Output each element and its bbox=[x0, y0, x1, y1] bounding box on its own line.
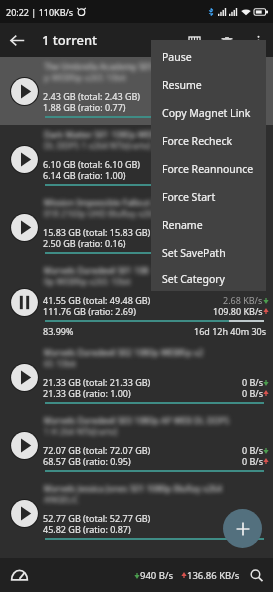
button[interactable]: Resume bbox=[151, 71, 266, 99]
button[interactable]: Marvels Daredevil S02 1080p WEBRip x2 bbox=[0, 343, 273, 411]
staticText: 136.86 KB/s bbox=[187, 569, 240, 582]
staticText: Resume bbox=[162, 78, 202, 92]
staticText: 6.10 GB (total: 6.10 GB) bbox=[43, 158, 141, 170]
button[interactable]: Rename bbox=[151, 211, 266, 239]
staticText: 0 B/s bbox=[242, 387, 263, 399]
staticText: 6.14 GB (ratio: 1.00) bbox=[43, 169, 126, 181]
staticText: Dark Matter S01 1080p WEB bbox=[44, 129, 157, 141]
staticText: Marvels Daredevil S02 1080p WEBRip x2 bbox=[44, 347, 204, 359]
staticText: The Umbrella Academy S01 1080 bbox=[44, 61, 175, 73]
staticText: 21.33 GB (ratio: 1.00) bbox=[43, 387, 131, 399]
staticText: 16d 12h 40m 30s bbox=[194, 325, 267, 337]
staticText: Marvels Daredevil S03 1080p AP WEB DL DD… bbox=[44, 415, 230, 427]
button[interactable]: Force Reannounce bbox=[151, 155, 266, 183]
button[interactable]: Pause bbox=[151, 43, 266, 71]
staticText: Rename bbox=[162, 218, 203, 232]
staticText: Copy Magnet Link bbox=[162, 106, 251, 120]
staticText: 20:22 | 110KB/s bbox=[6, 6, 74, 18]
button[interactable]: Mission Impossible Fallout 2 bbox=[0, 193, 273, 261]
staticText: Force Start bbox=[162, 190, 216, 204]
button[interactable]: Copy Magnet Link bbox=[151, 99, 266, 127]
staticText: Force Reannounce bbox=[162, 162, 254, 176]
staticText: 2.43 GB (total: 2.43 GB) bbox=[43, 90, 141, 102]
staticText: 0p WEBRip x265 10bit bbox=[44, 276, 131, 288]
staticText: 2.68 KB/s bbox=[223, 294, 263, 306]
staticText: 65 10bit bbox=[44, 358, 77, 370]
staticText: 940 B/s bbox=[140, 569, 174, 582]
staticText: Pause bbox=[162, 50, 192, 64]
staticText: Set SavePath bbox=[162, 246, 226, 260]
staticText: Set Category bbox=[162, 272, 225, 286]
staticText: ANGELiC bbox=[44, 494, 79, 506]
button[interactable]: Marvels Daredevil S03 1080p AP WEB DL DD… bbox=[0, 411, 273, 479]
staticText: 41.55 GB (total: 49.48 GB) bbox=[43, 294, 151, 306]
staticText: Force Recheck bbox=[162, 134, 233, 148]
staticText: 52.77 GB (total: 52.77 GB) bbox=[43, 512, 151, 524]
button[interactable]: Marvels Daredevil S01 108 bbox=[0, 261, 273, 343]
staticText: 018 2160p UHD BluRay x265 bbox=[44, 208, 158, 220]
button[interactable]: Marvels Jessica Jones S01 1080p BluRay x… bbox=[0, 479, 273, 547]
staticText: 21.33 GB (total: 21.33 GB) bbox=[43, 376, 151, 388]
staticText: 83.99% bbox=[43, 325, 74, 337]
staticText: 1 torrent bbox=[42, 31, 98, 49]
staticText: Mission Impossible Fallout 2 bbox=[44, 197, 157, 209]
staticText: 1.88 GB (ratio: 0.77) bbox=[43, 101, 126, 113]
button[interactable]: Select all bbox=[180, 26, 209, 55]
button[interactable]: The Umbrella Academy S01 1080 bbox=[0, 57, 273, 125]
staticText: 2.50 GB (ratio: 0.16) bbox=[43, 237, 126, 249]
button[interactable]: Back bbox=[0, 23, 34, 57]
button[interactable]: Set SavePath bbox=[151, 239, 266, 267]
staticText: 0 B/s bbox=[242, 455, 263, 467]
staticText: Marvels Daredevil S01 108 bbox=[44, 265, 149, 277]
button[interactable]: Speed limit bbox=[6, 562, 32, 588]
staticText: 68.57 GB (ratio: 0.95) bbox=[43, 455, 131, 467]
staticText: 15.83 GB (total: 15.83 GB) bbox=[43, 226, 151, 238]
staticText: DL DDP5 1 x264 NTb[rartv] bbox=[44, 140, 151, 152]
staticText: p WEBRip x265 10bit bbox=[44, 72, 127, 84]
staticText: 45.82 GB (ratio: 0.87) bbox=[43, 523, 131, 535]
staticText: 111.76 GB (ratio: 2.69) bbox=[43, 305, 136, 317]
staticText: 72.07 GB (total: 72.07 GB) bbox=[43, 444, 151, 456]
staticText: 109.80 KB/s bbox=[213, 305, 263, 317]
staticText: 0 B/s bbox=[242, 444, 263, 456]
button[interactable]: Delete bbox=[212, 26, 241, 55]
button[interactable]: Set Category bbox=[151, 267, 266, 291]
button[interactable]: Dark Matter S01 1080p WEB bbox=[0, 125, 273, 193]
staticText: 1 H 264 NTb[rartv] bbox=[44, 426, 118, 438]
staticText: Marvels Jessica Jones S01 1080p BluRay x… bbox=[44, 483, 223, 495]
button[interactable]: Add torrent bbox=[223, 509, 262, 548]
staticText: 0 B/s bbox=[242, 376, 263, 388]
button[interactable]: Force Start bbox=[151, 183, 266, 211]
button[interactable]: Search bbox=[245, 564, 267, 586]
button[interactable]: Force Recheck bbox=[151, 127, 266, 155]
button[interactable]: More options bbox=[245, 27, 271, 53]
